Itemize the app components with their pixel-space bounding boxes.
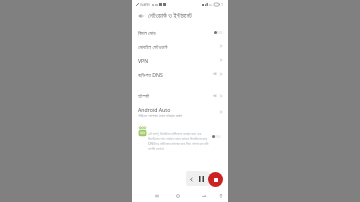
- staticText: VPN: [138, 57, 149, 64]
- staticText: এই অ্যাপ, ডিভাইসে সেটিংসকে ব্যবহার করে এ…: [148, 131, 211, 151]
- button[interactable]: Recents: [152, 189, 162, 202]
- button[interactable]: Stop recording: [208, 172, 223, 187]
- button[interactable]: ব্যক্তিগত DNS: [132, 67, 228, 81]
- staticText: নেটওয়ার্ক ও ইন্টারনেট: [148, 11, 192, 20]
- button[interactable]: Toggle: [212, 134, 221, 139]
- staticText: বন্ধ: [213, 94, 217, 98]
- button[interactable]: বিমান মোড: [132, 25, 228, 39]
- staticText: VoWiFi: [140, 3, 151, 7]
- button[interactable]: Back: [199, 189, 209, 202]
- button[interactable]: Home: [173, 189, 183, 202]
- button[interactable]: Switch keyboard: [216, 189, 226, 202]
- staticText: Android Auto: [138, 106, 171, 113]
- staticText: হটস্পট: [138, 94, 150, 99]
- staticText: ব্যক্তিগত DNS: [138, 71, 163, 78]
- button[interactable]: VPN: [132, 53, 228, 67]
- staticText: বন্ধ: [213, 72, 217, 76]
- button[interactable]: Pause recording: [197, 174, 206, 183]
- staticText: ৪৬: [209, 3, 213, 6]
- button[interactable]: Back: [135, 10, 146, 21]
- button[interactable]: Previous: [187, 175, 195, 183]
- button[interactable]: মোবাইল নেটওয়ার্ক: [132, 39, 228, 53]
- staticText: মোবাইল নেটওয়ার্ক: [138, 43, 168, 50]
- staticText: 1: [221, 2, 223, 7]
- button[interactable]: Toggle: [214, 30, 223, 35]
- staticText: বিমান মোড: [138, 29, 156, 36]
- button[interactable]: হটস্পট: [132, 89, 228, 103]
- button[interactable]: Android Auto: [132, 103, 228, 121]
- staticText: গাড়িতে আপনার ফোন ব্যবহার করুন: [138, 113, 183, 119]
